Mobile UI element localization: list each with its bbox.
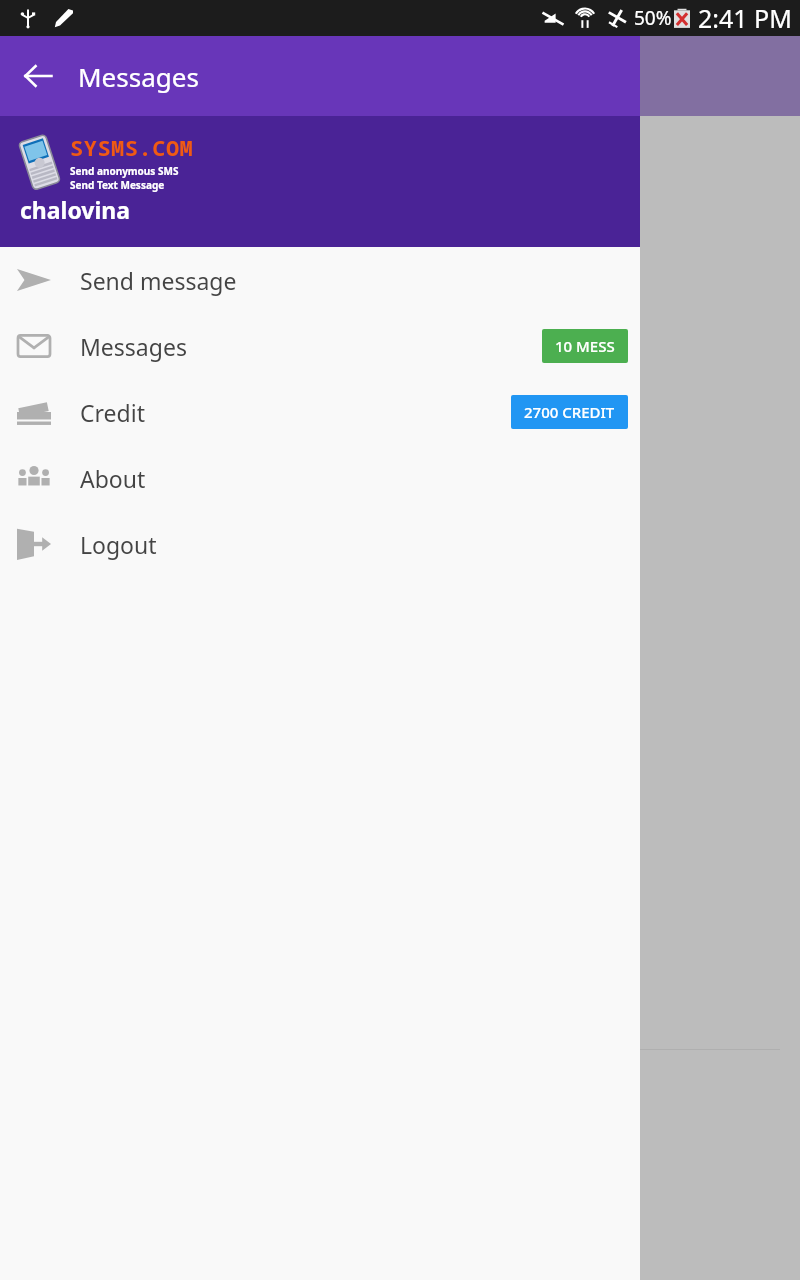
staticText: Type message here or press the microphon… — [28, 226, 514, 255]
staticText: 10 MESS — [555, 336, 615, 356]
staticText: Logout — [80, 529, 157, 560]
staticText: Send anonymous SMS — [70, 164, 179, 178]
button[interactable]: Messages — [0, 313, 640, 379]
button[interactable]: Send message — [0, 247, 640, 313]
button[interactable]: Credit — [0, 379, 640, 445]
staticText: SYSMS.COM — [70, 132, 194, 162]
staticText: Messages — [78, 59, 199, 94]
staticText: chalovina — [20, 194, 131, 225]
staticText: About — [80, 463, 146, 494]
staticText: Messages — [80, 331, 187, 362]
staticText: 50% — [634, 5, 672, 31]
staticText: 2:41 PM — [698, 1, 792, 35]
staticText: 2700 CREDIT — [524, 402, 615, 422]
button[interactable]: Logout — [0, 511, 640, 577]
button[interactable]: About — [0, 445, 640, 511]
staticText: Credit — [80, 397, 145, 428]
staticText: Send Text Message — [70, 178, 165, 192]
button[interactable]: Back — [12, 50, 64, 102]
staticText: Send message — [80, 265, 237, 296]
